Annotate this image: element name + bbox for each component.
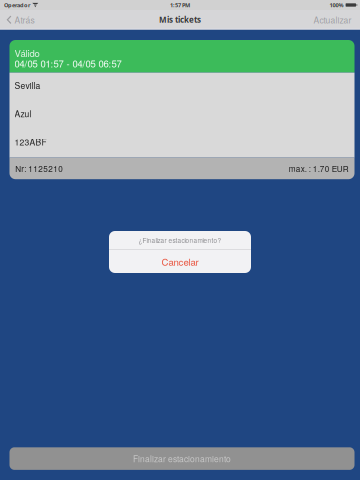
staticText: Atrás (15, 14, 35, 26)
staticText: Finalizar estacionamiento (133, 453, 231, 465)
staticText: Azul (15, 107, 32, 120)
button[interactable]: Cancelar (109, 250, 251, 273)
staticText: 123ABF (15, 136, 47, 148)
button[interactable]: Actualizar (307, 10, 360, 29)
button[interactable]: Atrás (0, 10, 42, 29)
staticText: Válido (15, 46, 40, 60)
staticText: 1:57 PM (170, 1, 190, 9)
staticText: Mis tickets (159, 14, 201, 25)
staticText: 04/05 01:57 - 04/05 06:57 (15, 57, 122, 70)
staticText: 100% (330, 1, 344, 9)
staticText: Operador (4, 1, 31, 9)
staticText: Sevilla (15, 79, 41, 91)
staticText: Cancelar (161, 255, 198, 268)
staticText: Nr: 1125210 (15, 163, 63, 174)
staticText: max. : 1.70 EUR (289, 163, 349, 174)
staticText: ¿Finalizar estacionamiento? (138, 236, 221, 245)
button[interactable]: Finalizar estacionamiento (9, 447, 354, 470)
staticText: Actualizar (314, 14, 352, 26)
